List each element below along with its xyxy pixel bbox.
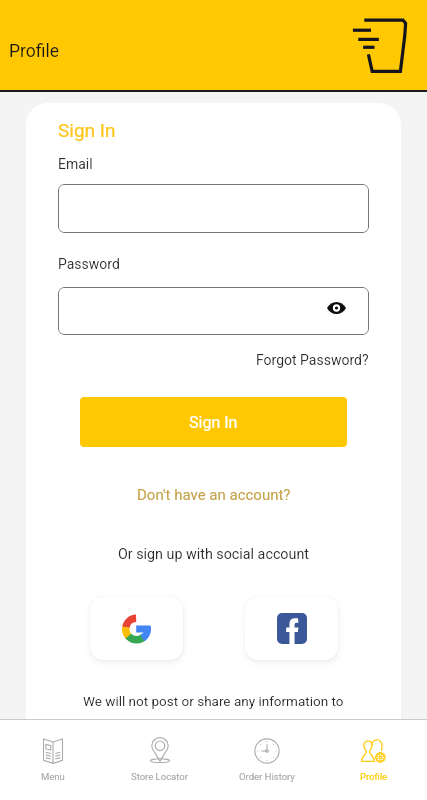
staticText: We will not post or share any informatio… <box>83 693 344 709</box>
button[interactable]: Show password <box>58 287 369 335</box>
staticText: Sign In <box>58 119 116 141</box>
button[interactable]: Forgot Password? <box>256 352 369 368</box>
staticText: Menu <box>41 771 65 782</box>
staticText: Profile <box>9 41 60 62</box>
button[interactable]: Sign In <box>80 397 347 447</box>
button[interactable]: Logo <box>348 11 410 73</box>
staticText: Order History <box>239 771 295 782</box>
button[interactable]: Profile <box>320 720 427 800</box>
button[interactable]: Store Locator <box>106 720 213 800</box>
button[interactable]: Sign in with Facebook <box>245 597 338 660</box>
button[interactable] <box>58 184 369 233</box>
staticText: Sign In <box>189 413 238 432</box>
button[interactable]: Order History <box>213 720 320 800</box>
staticText: Or sign up with social account <box>118 546 309 563</box>
button[interactable]: Menu <box>0 720 106 800</box>
staticText: Email <box>58 156 93 172</box>
button[interactable]: Show password <box>327 300 346 316</box>
staticText: Store Locator <box>131 771 188 782</box>
button[interactable]: Don't have an account? <box>137 486 291 504</box>
staticText: Profile <box>360 771 388 782</box>
staticText: Password <box>58 256 120 272</box>
button[interactable]: Sign in with Google <box>90 597 183 660</box>
